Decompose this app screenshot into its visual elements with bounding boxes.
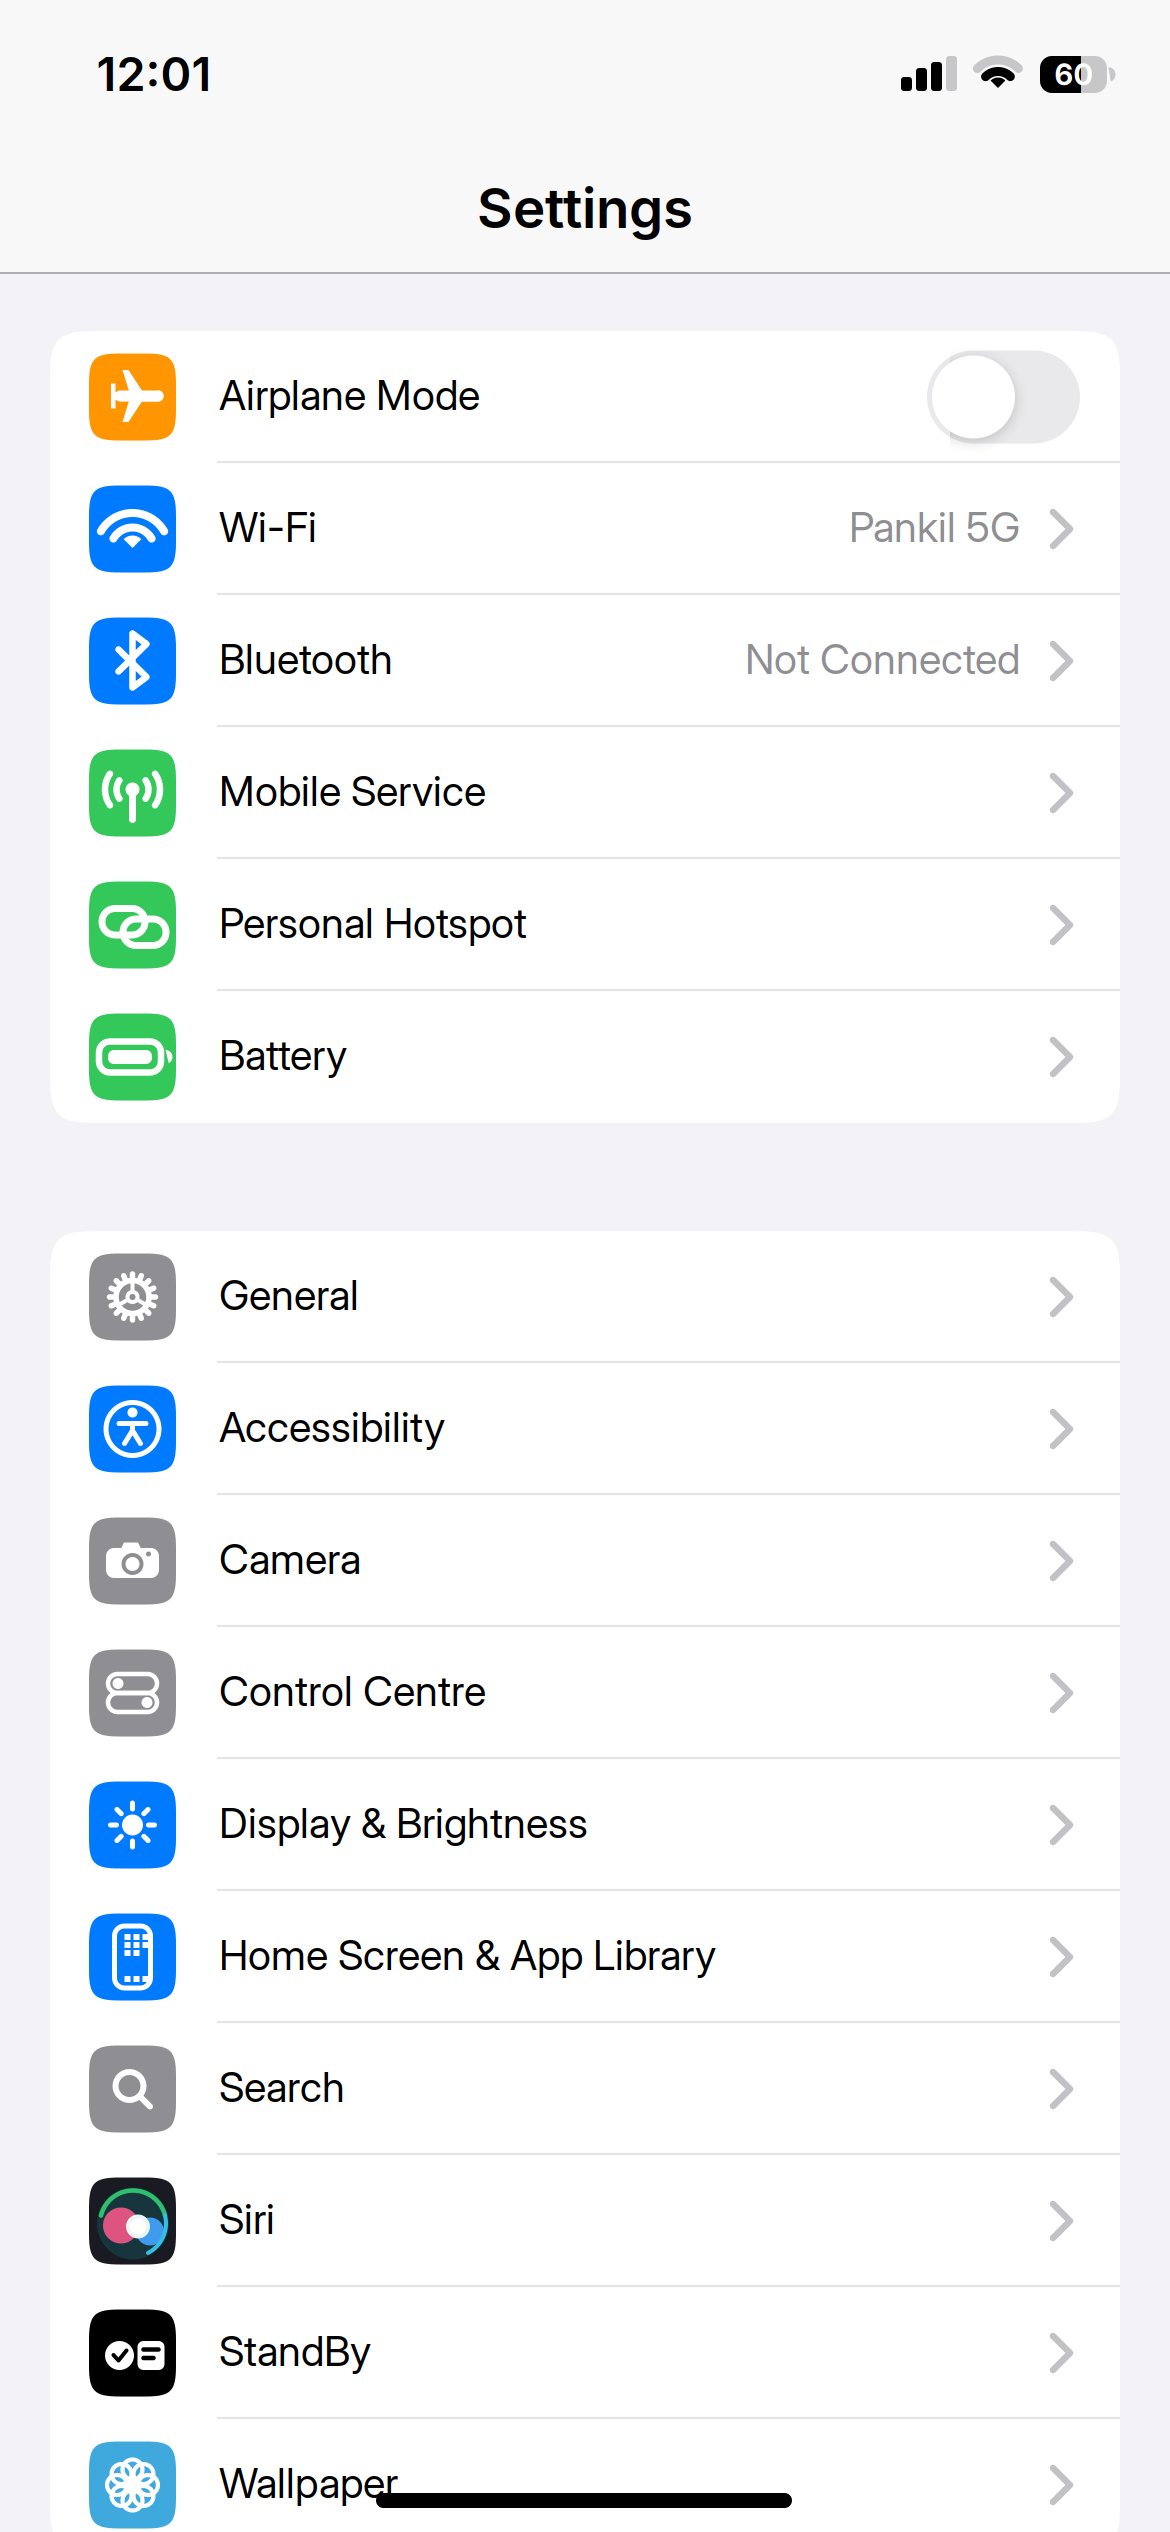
button[interactable]: General	[50, 1231, 1120, 1363]
staticText: Search	[219, 2063, 345, 2111]
staticText: Wi-Fi	[219, 503, 317, 551]
staticText: Display & Brightness	[219, 1799, 588, 1847]
button[interactable]: Wi-Fi	[50, 463, 1120, 595]
staticText: Control Centre	[219, 1667, 486, 1715]
staticText: Siri	[219, 2195, 275, 2243]
button[interactable]: Wallpaper	[50, 2419, 1120, 2532]
button[interactable]: StandBy	[50, 2287, 1120, 2419]
button[interactable]: Control Centre	[50, 1627, 1120, 1759]
button[interactable]: Personal Hotspot	[50, 859, 1120, 991]
staticText: Camera	[219, 1535, 361, 1583]
staticText: Battery	[219, 1031, 347, 1079]
staticText: Settings	[477, 176, 693, 240]
staticText: General	[219, 1271, 359, 1319]
button[interactable]: Camera	[50, 1495, 1120, 1627]
staticText: Mobile Service	[219, 767, 486, 815]
button[interactable]: Airplane Mode	[927, 350, 1120, 443]
staticText: Personal Hotspot	[219, 899, 527, 947]
staticText: Home Screen & App Library	[219, 1931, 716, 1979]
button[interactable]: Home Screen & App Library	[50, 1891, 1120, 2023]
staticText: Not Connected	[745, 635, 1020, 683]
staticText: 12:01	[96, 46, 211, 102]
staticText: Wallpaper	[219, 2459, 398, 2507]
staticText: Airplane Mode	[219, 371, 480, 419]
button[interactable]: Accessibility	[50, 1363, 1120, 1495]
staticText: 60	[1054, 57, 1092, 92]
staticText: Bluetooth	[219, 635, 393, 683]
button[interactable]: Battery	[50, 991, 1120, 1123]
staticText: StandBy	[219, 2327, 371, 2375]
button[interactable]: Siri	[50, 2155, 1120, 2287]
staticText: Pankil 5G	[849, 503, 1020, 551]
button[interactable]: Search	[50, 2023, 1120, 2155]
button[interactable]: Mobile Service	[50, 727, 1120, 859]
staticText: Accessibility	[219, 1403, 445, 1451]
button[interactable]: Display & Brightness	[50, 1759, 1120, 1891]
button[interactable]: Bluetooth	[50, 595, 1120, 727]
